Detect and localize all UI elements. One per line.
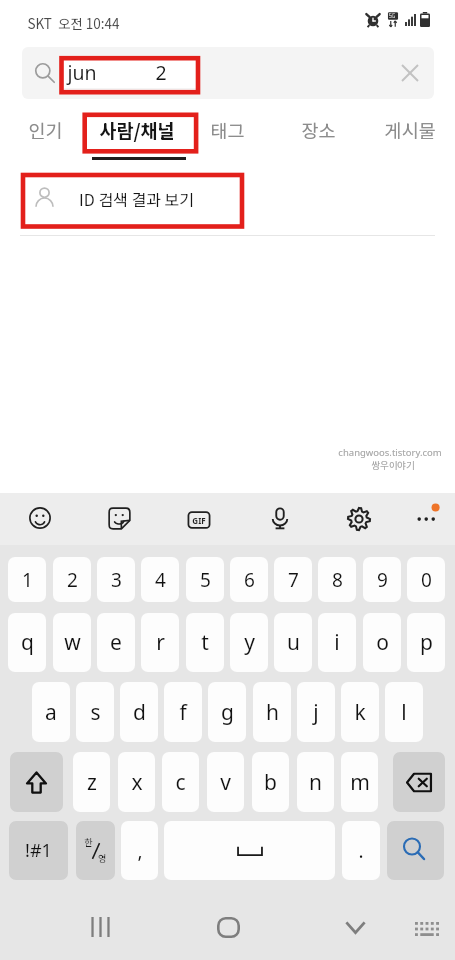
button[interactable]: Switch keyboard bbox=[392, 888, 455, 960]
staticText: k bbox=[354, 698, 366, 727]
staticText: 2 bbox=[155, 59, 167, 86]
staticText: q bbox=[21, 628, 34, 657]
staticText: r bbox=[156, 628, 165, 657]
button[interactable]: o bbox=[363, 613, 401, 672]
staticText: l bbox=[401, 698, 407, 727]
button[interactable]: z bbox=[73, 752, 110, 812]
button[interactable]: r bbox=[141, 613, 179, 672]
button[interactable]: a bbox=[32, 682, 70, 742]
button[interactable]: u bbox=[274, 613, 312, 672]
button[interactable]: v bbox=[207, 752, 244, 812]
button[interactable]: m bbox=[341, 752, 378, 812]
button[interactable]: i bbox=[318, 613, 356, 672]
button[interactable]: 4 bbox=[141, 557, 179, 602]
button[interactable]: Search bbox=[387, 821, 444, 880]
button[interactable]: q bbox=[8, 613, 46, 672]
staticText: GIF bbox=[190, 515, 208, 526]
staticText: 사람/채널 bbox=[99, 117, 175, 144]
button[interactable]: e bbox=[97, 613, 135, 672]
staticText: h bbox=[266, 698, 279, 727]
button[interactable]: Recents bbox=[62, 888, 138, 960]
button[interactable]: Sticker bbox=[108, 507, 131, 530]
button[interactable]: Voice input bbox=[269, 507, 291, 529]
button[interactable]: t bbox=[186, 613, 224, 672]
button[interactable]: !#1 bbox=[9, 821, 68, 880]
button[interactable]: 태그 bbox=[182, 103, 273, 157]
staticText: 9 bbox=[377, 567, 388, 593]
staticText: e bbox=[110, 628, 122, 657]
button[interactable]: Settings bbox=[347, 507, 371, 531]
staticText: g bbox=[221, 698, 234, 727]
staticText: a bbox=[45, 698, 57, 727]
staticText: changwoos.tistory.com bbox=[338, 446, 442, 459]
button[interactable]: ID 검색 결과 보기 bbox=[0, 168, 455, 228]
staticText: 5 bbox=[200, 567, 211, 593]
button[interactable]: 2 bbox=[53, 557, 91, 602]
button[interactable]: 3 bbox=[97, 557, 135, 602]
button[interactable]: Backspace bbox=[393, 752, 445, 812]
button[interactable]: s bbox=[76, 682, 114, 742]
button[interactable]: d bbox=[120, 682, 158, 742]
button[interactable]: n bbox=[297, 752, 334, 812]
button[interactable]: Hide keyboard bbox=[317, 888, 393, 960]
staticText: 0 bbox=[421, 567, 432, 593]
staticText: z bbox=[87, 768, 97, 797]
button[interactable]: Home bbox=[190, 888, 266, 960]
staticText: c bbox=[175, 768, 186, 797]
staticText: n bbox=[309, 768, 322, 797]
staticText: j bbox=[313, 698, 319, 727]
button[interactable]: Emoji bbox=[29, 507, 51, 529]
button[interactable]: 6 bbox=[230, 557, 268, 602]
button[interactable]: h bbox=[253, 682, 291, 742]
staticText: i bbox=[334, 628, 340, 657]
button[interactable]: l bbox=[385, 682, 423, 742]
button[interactable]: 사람/채널 bbox=[91, 103, 182, 157]
button[interactable]: . bbox=[342, 821, 380, 880]
button[interactable]: , bbox=[121, 821, 158, 880]
staticText: o bbox=[376, 628, 389, 657]
button[interactable]: Shift bbox=[10, 752, 63, 812]
staticText: SKT 오전 10:44 bbox=[27, 13, 120, 33]
button[interactable]: 5 bbox=[186, 557, 224, 602]
button[interactable]: GIF bbox=[188, 509, 210, 531]
staticText: b bbox=[264, 768, 277, 797]
button[interactable]: w bbox=[53, 613, 91, 672]
button[interactable]: f bbox=[164, 682, 202, 742]
button[interactable]: jun bbox=[22, 47, 434, 99]
button[interactable]: 1 bbox=[8, 557, 46, 602]
button[interactable]: 인기 bbox=[0, 103, 91, 157]
staticText: f bbox=[179, 698, 187, 727]
staticText: 7 bbox=[288, 567, 299, 593]
staticText: . bbox=[358, 838, 364, 864]
button[interactable]: j bbox=[297, 682, 335, 742]
staticText: p bbox=[420, 628, 433, 657]
staticText: , bbox=[137, 838, 143, 864]
staticText: v bbox=[220, 768, 231, 797]
button[interactable]: 8 bbox=[318, 557, 356, 602]
staticText: 인기 bbox=[28, 117, 63, 144]
staticText: 쌍우이야기 bbox=[371, 458, 415, 472]
button[interactable]: 9 bbox=[363, 557, 401, 602]
button[interactable]: g bbox=[208, 682, 246, 742]
staticText: 한 bbox=[84, 836, 93, 849]
button[interactable]: More bbox=[414, 503, 440, 529]
button[interactable]: Space bbox=[164, 821, 335, 880]
staticText: d bbox=[133, 698, 146, 727]
staticText: !#1 bbox=[25, 838, 52, 863]
staticText: t bbox=[201, 628, 209, 657]
button[interactable]: k bbox=[341, 682, 379, 742]
button[interactable]: b bbox=[252, 752, 289, 812]
staticText: 2 bbox=[67, 567, 78, 593]
staticText: 4 bbox=[155, 567, 166, 593]
button[interactable]: p bbox=[407, 613, 445, 672]
button[interactable]: 장소 bbox=[273, 103, 364, 157]
button[interactable]: c bbox=[162, 752, 199, 812]
button[interactable]: y bbox=[230, 613, 268, 672]
staticText: w bbox=[64, 628, 81, 657]
button[interactable]: 게시물 bbox=[364, 103, 455, 157]
button[interactable]: 7 bbox=[274, 557, 312, 602]
button[interactable]: x bbox=[118, 752, 155, 812]
button[interactable]: Korean/English bbox=[76, 821, 115, 880]
staticText: u bbox=[287, 628, 300, 657]
button[interactable]: 0 bbox=[407, 557, 445, 602]
